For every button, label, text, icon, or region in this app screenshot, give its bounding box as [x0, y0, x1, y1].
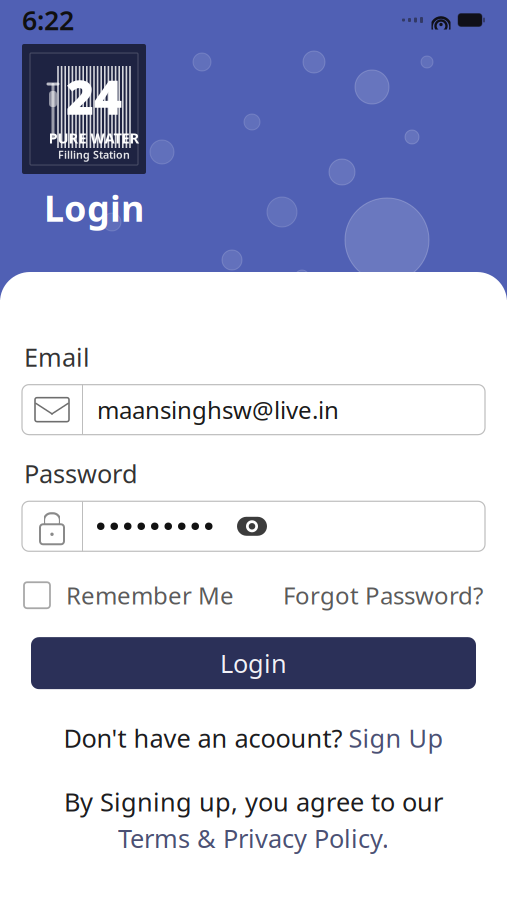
staticText: Remember Me — [66, 579, 234, 611]
button[interactable]: Remember Me — [24, 573, 234, 617]
staticText: Email — [24, 340, 90, 374]
button[interactable]: Login — [31, 637, 476, 689]
staticText: Filling Station — [58, 147, 130, 162]
staticText: Don't have an acoount? — [63, 721, 342, 755]
button[interactable]: Show password — [226, 501, 278, 551]
staticText: Login — [220, 646, 287, 680]
staticText: Forgot Password? — [283, 579, 483, 611]
button[interactable]: By Signing up, you agree to our — [0, 783, 507, 857]
staticText: 6:22 — [22, 2, 74, 38]
staticText: PURE WATER — [48, 128, 139, 147]
button[interactable]: Don't have an acoount? — [0, 717, 507, 759]
staticText: Login — [44, 184, 144, 232]
staticText: Terms & Privacy Policy. — [118, 821, 389, 855]
staticText: Sign Up — [348, 721, 443, 755]
staticText: maansinghsw@live.in — [97, 394, 339, 426]
staticText: By Signing up, you agree to our — [64, 785, 443, 818]
staticText: Password — [24, 457, 138, 490]
staticText: 24 — [66, 64, 122, 128]
button[interactable]: Forgot Password? — [283, 573, 483, 617]
